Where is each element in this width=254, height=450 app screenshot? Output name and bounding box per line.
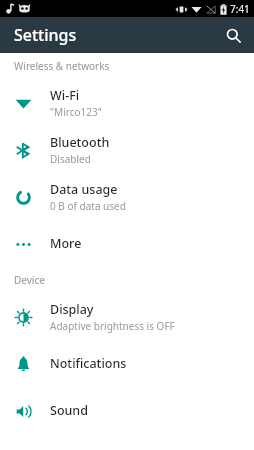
button[interactable]: More: [0, 220, 254, 267]
button[interactable]: Bluetooth: [0, 126, 254, 173]
staticText: 0 B of data used: [50, 199, 126, 213]
button[interactable]: Notifications: [0, 340, 254, 387]
button[interactable]: Display: [0, 293, 254, 340]
staticText: Disabled: [50, 152, 91, 166]
staticText: Notifications: [50, 355, 127, 372]
staticText: Display: [50, 301, 94, 318]
staticText: Adaptive brightness is OFF: [50, 319, 175, 333]
staticText: 7:41: [230, 2, 250, 16]
staticText: Wi-Fi: [50, 87, 80, 104]
staticText: Bluetooth: [50, 134, 110, 151]
button[interactable]: Sound: [0, 387, 254, 434]
staticText: Wireless & networks: [14, 59, 110, 73]
staticText: Settings: [14, 24, 77, 46]
staticText: More: [50, 235, 82, 252]
button[interactable]: Data usage: [0, 173, 254, 220]
button[interactable]: Wi-Fi: [0, 79, 254, 126]
staticText: Data usage: [50, 181, 118, 198]
button[interactable]: Search: [218, 20, 248, 50]
staticText: Sound: [50, 402, 88, 419]
staticText: Device: [14, 273, 45, 287]
staticText: "Mirco123": [50, 105, 102, 119]
